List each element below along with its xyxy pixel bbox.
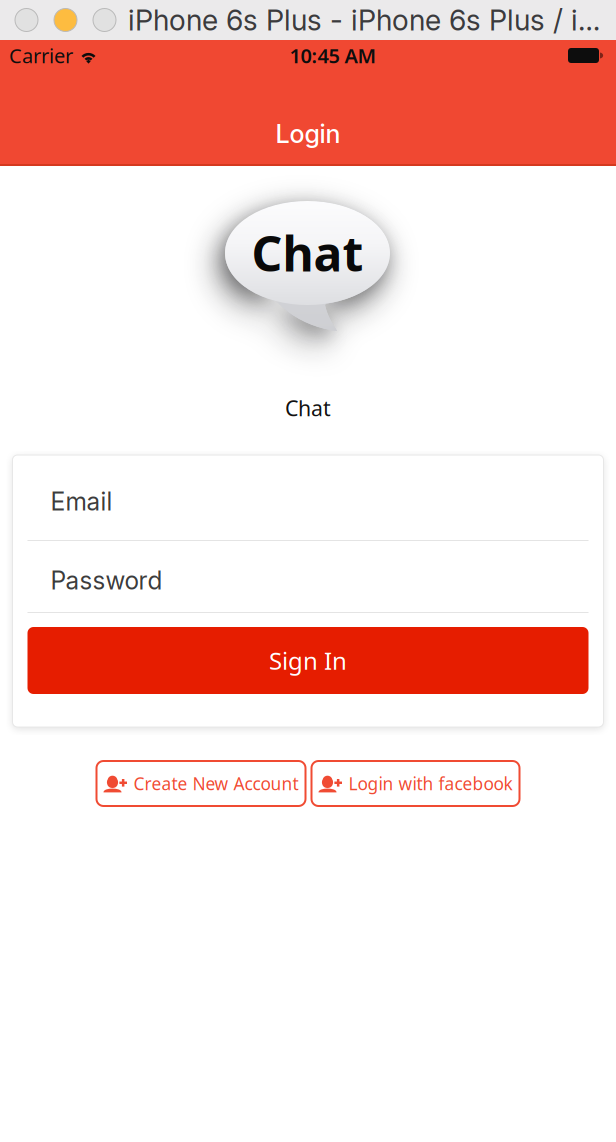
staticText: Create New Account (133, 772, 298, 795)
staticText: Password (50, 566, 162, 595)
staticText: Carrier (9, 42, 73, 69)
button[interactable]: Create New Account (96, 761, 305, 806)
button[interactable]: Login with facebook (311, 761, 519, 806)
staticText: Sign In (269, 645, 347, 676)
staticText: iPhone 6s Plus - iPhone 6s Plus / i… (128, 3, 600, 37)
staticText: Email (50, 487, 112, 516)
staticText: Login with facebook (348, 772, 512, 795)
button[interactable]: Sign In (27, 627, 588, 694)
staticText: 10:45 AM (289, 42, 376, 69)
staticText: Login (275, 118, 340, 149)
staticText: Chat (251, 221, 363, 285)
staticText: Chat (285, 394, 331, 422)
